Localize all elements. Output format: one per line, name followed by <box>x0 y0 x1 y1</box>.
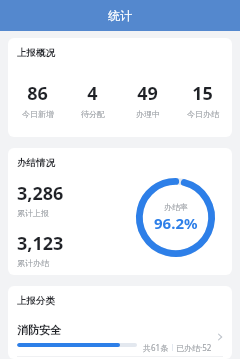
staticText: 3,123 <box>17 231 64 256</box>
staticText: 消防安全 <box>17 323 61 337</box>
staticText: 办结率 <box>164 202 188 212</box>
other: 查看详情 <box>214 331 226 343</box>
staticText: 办结情况 <box>17 157 55 169</box>
staticText: 共61条 <box>143 342 169 353</box>
staticText: 96.2% <box>154 213 198 233</box>
staticText: 今日办结 <box>187 109 219 119</box>
staticText: 累计上报 <box>17 208 49 218</box>
button[interactable]: 上报概况 <box>8 38 232 137</box>
staticText: 累计办结 <box>17 258 49 268</box>
staticText: 今日新增 <box>22 109 54 119</box>
staticText: 4 <box>87 81 98 106</box>
staticText: 上报分类 <box>17 295 55 307</box>
staticText: 86 <box>27 81 48 106</box>
staticText: 统计 <box>108 8 132 23</box>
staticText: 已办结·52 <box>176 342 212 353</box>
staticText: 上报概况 <box>17 47 55 59</box>
button[interactable]: 消防安全 <box>8 321 232 356</box>
staticText: 待分配 <box>81 109 105 119</box>
staticText: 49 <box>137 81 158 106</box>
button[interactable]: 办结情况 <box>8 148 232 275</box>
staticText: 办理中 <box>136 109 160 119</box>
staticText: 15 <box>192 81 213 106</box>
staticText: 3,286 <box>17 181 64 206</box>
